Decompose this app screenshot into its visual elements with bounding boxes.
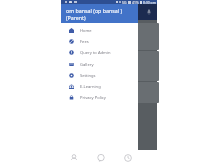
button[interactable]: Query to Admin [61,47,138,58]
button[interactable]: History [114,150,141,165]
button[interactable]: Notifications [144,5,154,19]
staticText: Privacy Policy [80,95,106,101]
button[interactable]: Privacy Policy [61,92,138,103]
staticText: om bansal (op bansal ) [66,7,123,14]
staticText: 41% [132,0,139,4]
staticText: 8:30 pm [143,0,156,4]
staticText: E-Learning [80,84,101,90]
staticText: (Parent) [66,14,86,21]
button[interactable]: Profile [61,150,87,165]
staticText: 5G [122,0,127,4]
staticText: Settings [80,73,96,79]
staticText: Gallery [80,62,94,68]
button[interactable] [63,23,159,50]
button[interactable]: Settings [61,70,138,81]
button[interactable] [63,82,159,103]
staticText: Query to Admin [80,50,111,56]
staticText: Fees [80,39,89,45]
staticText: Home [80,28,92,34]
button[interactable]: Fees [61,36,138,47]
button[interactable]: Home [61,25,138,36]
button[interactable]: Gallery [61,59,138,70]
button[interactable] [63,51,159,81]
button[interactable]: E-Learning [61,81,138,92]
button[interactable]: Messages [87,150,114,165]
